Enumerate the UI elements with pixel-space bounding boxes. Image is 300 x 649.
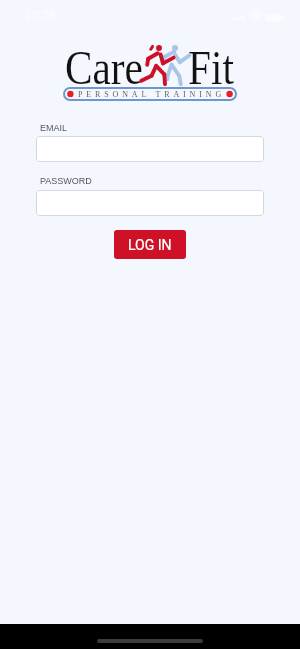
staticText: Care — [65, 41, 143, 94]
button[interactable]: LOG IN — [114, 230, 186, 259]
button[interactable]: Text input — [36, 190, 264, 216]
staticText: PERSONAL TRAINING — [78, 90, 226, 99]
staticText: PASSWORD — [40, 176, 92, 186]
button[interactable]: Text input — [36, 136, 264, 162]
staticText: EMAIL — [40, 123, 68, 133]
staticText: Fit — [188, 41, 234, 94]
staticText: LOG IN — [128, 237, 172, 253]
